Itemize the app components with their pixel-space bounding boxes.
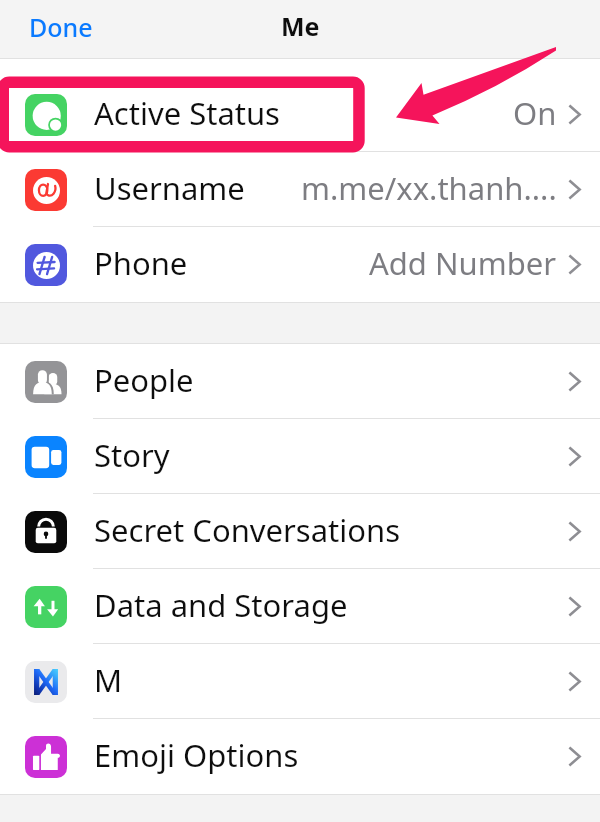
button[interactable]: Done	[0, 4, 115, 54]
button[interactable]: Phone	[0, 227, 600, 302]
button[interactable]: Active Status	[0, 77, 600, 152]
button[interactable]: M	[0, 644, 600, 719]
staticText: m.me/xx.thanh....	[301, 167, 557, 209]
staticText: M	[94, 659, 123, 701]
button[interactable]: Username	[0, 152, 600, 227]
staticText: Done	[29, 10, 93, 44]
button[interactable]: Story	[0, 419, 600, 494]
staticText: Username	[94, 167, 245, 209]
staticText: Story	[94, 434, 170, 476]
staticText: People	[94, 359, 194, 401]
staticText: Add Number	[369, 242, 557, 284]
button[interactable]: Data and Storage	[0, 569, 600, 644]
staticText: On	[513, 92, 557, 134]
staticText: Active Status	[94, 92, 280, 134]
button[interactable]: People	[0, 344, 600, 419]
staticText: Emoji Options	[94, 734, 299, 776]
staticText: Me	[281, 9, 320, 43]
staticText: Secret Conversations	[94, 509, 401, 551]
button[interactable]: Emoji Options	[0, 719, 600, 794]
button[interactable]: Secret Conversations	[0, 494, 600, 569]
staticText: Phone	[94, 242, 188, 284]
staticText: Data and Storage	[94, 584, 348, 626]
